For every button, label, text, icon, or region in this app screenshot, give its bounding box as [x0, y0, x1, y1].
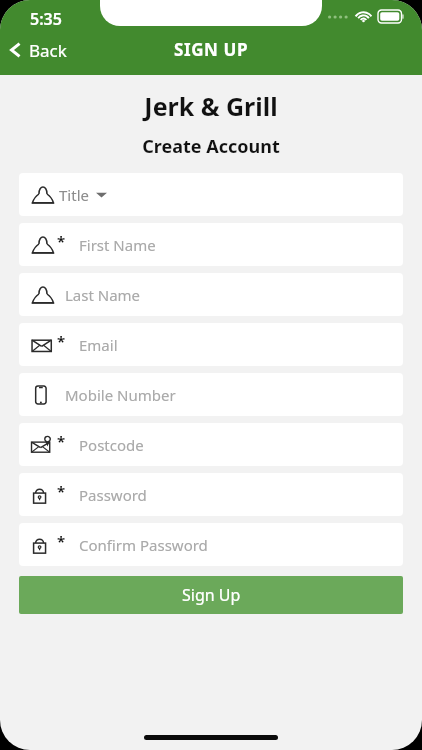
staticText: Title	[59, 185, 89, 205]
button[interactable]: *	[19, 473, 403, 516]
staticText: *	[57, 331, 66, 351]
staticText: Password	[79, 485, 147, 505]
staticText: Sign Up	[182, 584, 241, 606]
button[interactable]: Back	[0, 41, 79, 75]
staticText: Back	[29, 39, 67, 62]
staticText: 5:35	[30, 8, 62, 30]
staticText: Confirm Password	[79, 535, 208, 555]
staticText: *	[57, 531, 66, 551]
button[interactable]: Mobile Number	[19, 373, 403, 416]
staticText: *	[57, 431, 66, 451]
staticText: Mobile Number	[65, 385, 176, 405]
staticText: Email	[79, 335, 118, 355]
button[interactable]: Last Name	[19, 273, 403, 316]
staticText: Create Account	[142, 134, 280, 159]
staticText: *	[57, 231, 66, 251]
staticText: *	[57, 481, 66, 501]
staticText: Postcode	[79, 435, 144, 455]
button[interactable]: *	[19, 523, 403, 566]
staticText: SIGN UP	[174, 38, 249, 61]
button[interactable]: Title	[19, 173, 403, 216]
button[interactable]: *	[19, 323, 403, 366]
staticText: First Name	[79, 235, 156, 255]
button[interactable]: *	[19, 223, 403, 266]
staticText: Jerk & Grill	[144, 89, 278, 123]
button[interactable]: Sign Up	[19, 576, 403, 614]
button[interactable]: *	[19, 423, 403, 466]
staticText: Last Name	[65, 285, 141, 305]
